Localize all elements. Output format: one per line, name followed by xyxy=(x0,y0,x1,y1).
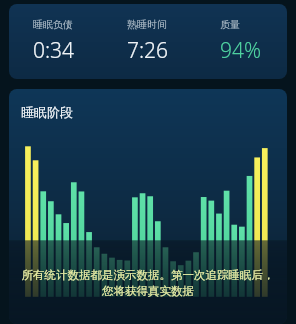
staticText: 0:34 xyxy=(33,36,75,65)
button[interactable]: 睡眠负债 xyxy=(9,4,287,79)
staticText: 睡眠负债 xyxy=(33,18,73,31)
button[interactable]: 质量 xyxy=(220,18,262,65)
staticText: 熟睡时间 xyxy=(127,18,167,31)
staticText: 质量 xyxy=(220,18,240,31)
button[interactable]: 睡眠负债 xyxy=(33,18,75,65)
button[interactable]: 睡眠阶段 xyxy=(9,89,287,324)
staticText: 7:26 xyxy=(127,36,169,65)
staticText: 所有统计数据都是演示数据。第一次追踪睡眠后，您将获得真实数据 xyxy=(17,268,279,298)
staticText: 睡眠阶段 xyxy=(21,104,73,120)
staticText: 94% xyxy=(220,36,262,65)
button[interactable]: 熟睡时间 xyxy=(127,18,169,65)
